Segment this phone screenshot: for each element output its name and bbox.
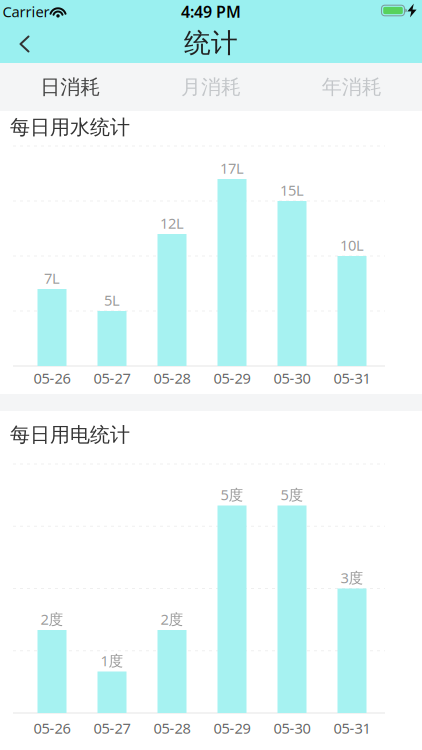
staticText: 5度 (220, 485, 243, 504)
staticText: 05-28 (153, 368, 190, 388)
button[interactable]: Back (0, 23, 44, 63)
staticText: 05-27 (93, 718, 130, 738)
button[interactable]: 月消耗 (141, 63, 281, 111)
staticText: 15L (280, 180, 304, 200)
staticText: 05-28 (153, 718, 190, 738)
staticText: 3度 (340, 568, 363, 587)
staticText: 2度 (40, 609, 63, 629)
staticText: 统计 (184, 27, 238, 59)
staticText: 7L (44, 268, 60, 288)
staticText: 5L (104, 290, 120, 310)
button[interactable]: 年消耗 (281, 63, 422, 111)
staticText: 05-26 (33, 368, 70, 388)
staticText: 05-30 (273, 718, 310, 738)
staticText: 05-29 (213, 368, 250, 388)
staticText: 05-31 (333, 368, 370, 388)
staticText: 每日用电统计 (10, 422, 130, 447)
button[interactable]: 日消耗 (0, 63, 141, 111)
staticText: 1度 (100, 651, 123, 670)
staticText: 4:49 PM (181, 1, 241, 22)
staticText: 月消耗 (181, 75, 241, 99)
staticText: 17L (220, 158, 244, 178)
staticText: 5度 (280, 485, 303, 504)
staticText: 12L (160, 213, 184, 233)
staticText: 05-26 (33, 718, 70, 738)
staticText: 每日用水统计 (10, 115, 130, 140)
staticText: 05-31 (333, 718, 370, 738)
staticText: 05-29 (213, 718, 250, 738)
staticText: 05-30 (273, 368, 310, 388)
staticText: 日消耗 (40, 75, 100, 99)
staticText: Carrier (2, 2, 49, 21)
staticText: 05-27 (93, 368, 130, 388)
staticText: 10L (340, 235, 364, 255)
staticText: 2度 (160, 609, 183, 629)
staticText: 年消耗 (322, 75, 382, 99)
